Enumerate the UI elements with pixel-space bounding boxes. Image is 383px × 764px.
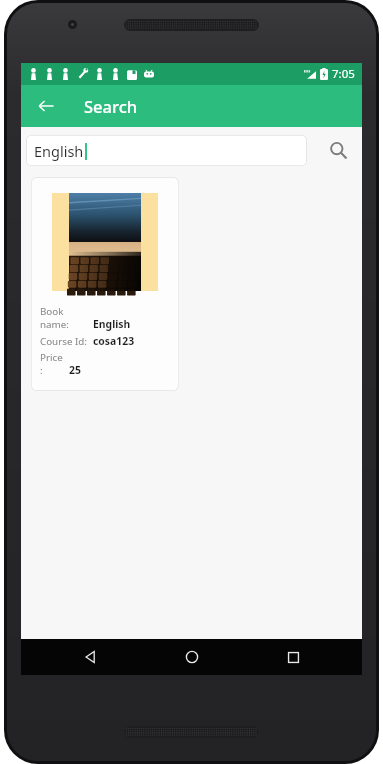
staticText: English: [93, 317, 131, 331]
staticText: English: [34, 141, 84, 161]
staticText: cosa123: [93, 334, 135, 348]
button[interactable]: Search: [322, 134, 354, 166]
staticText: Search: [84, 95, 138, 117]
staticText: 25: [69, 363, 81, 377]
button[interactable]: Book name:: [31, 177, 179, 391]
button[interactable]: English: [26, 135, 307, 166]
button[interactable]: Back: [73, 640, 107, 674]
staticText: 7:05: [332, 66, 355, 82]
staticText: Course Id:: [40, 335, 87, 348]
staticText: Price:: [40, 351, 64, 377]
button[interactable]: Recents: [276, 640, 310, 674]
staticText: Book name:: [40, 305, 88, 331]
button[interactable]: Back: [29, 89, 63, 123]
button[interactable]: Home: [175, 640, 209, 674]
